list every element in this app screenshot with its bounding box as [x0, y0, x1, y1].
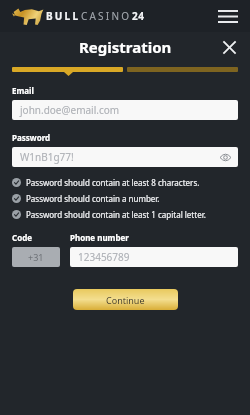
button[interactable]: Continue [73, 289, 178, 310]
staticText: CASINO [81, 9, 132, 23]
staticText: Password should contain a number. [26, 193, 160, 204]
staticText: Password should contain at least 1 capit… [26, 209, 206, 220]
button[interactable]: john.doe@email.com [12, 100, 238, 120]
staticText: Registration [79, 37, 172, 57]
button[interactable]: 123456789 [70, 247, 238, 267]
button[interactable]: W1nB1g77! [12, 147, 238, 167]
staticText: Code [12, 232, 60, 243]
button[interactable]: Menu [216, 4, 240, 28]
staticText: Phone number [70, 232, 129, 243]
staticText: +31 [28, 251, 44, 263]
staticText: Email [12, 85, 34, 96]
button[interactable]: +31 [12, 247, 60, 267]
staticText: 123456789 [78, 250, 130, 264]
staticText: john.doe@email.com [20, 103, 120, 117]
button[interactable]: Close [218, 36, 240, 58]
staticText: Password [12, 132, 51, 143]
staticText: W1nB1g77! [20, 150, 74, 164]
staticText: 24 [132, 9, 145, 23]
staticText: Continue [106, 294, 145, 306]
staticText: Password should contain at least 8 chara… [26, 177, 200, 188]
staticText: BULL [46, 9, 81, 23]
button[interactable]: Show password [218, 150, 232, 164]
